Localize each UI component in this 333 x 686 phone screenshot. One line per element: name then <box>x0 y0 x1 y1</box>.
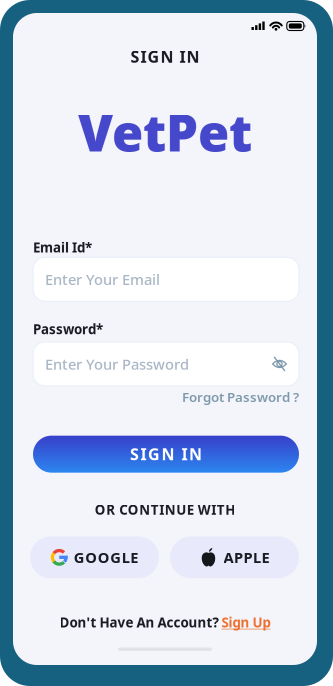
button[interactable]: Sign Up <box>221 613 270 631</box>
staticText: Sign Up <box>221 613 270 631</box>
staticText: GOOGLE <box>74 548 138 567</box>
staticText: Enter Your Password <box>45 354 189 374</box>
staticText: Forgot Password ? <box>182 388 299 406</box>
button[interactable]: Forgot Password ? <box>182 388 299 406</box>
button[interactable]: Enter Your Password <box>33 342 299 386</box>
staticText: Enter Your Email <box>45 269 160 289</box>
staticText: SIGN IN <box>130 443 202 465</box>
staticText: Don't Have An Account? <box>59 613 218 631</box>
button[interactable]: Enter Your Email <box>33 257 299 301</box>
staticText: APPLE <box>223 548 269 567</box>
staticText: SIGN IN <box>130 46 199 67</box>
staticText: Email Id* <box>33 238 92 256</box>
button[interactable]: SIGN IN <box>33 436 299 473</box>
button[interactable] <box>272 356 287 371</box>
staticText: VetPet <box>78 98 252 165</box>
staticText: OR CONTINUE WITH <box>95 501 235 518</box>
button[interactable]: GOOGLE <box>30 536 159 578</box>
staticText: Password* <box>33 320 103 338</box>
button[interactable]: APPLE <box>170 536 299 578</box>
